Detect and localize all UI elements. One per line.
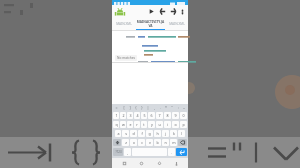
button[interactable]: x	[130, 139, 137, 146]
staticText: 0	[182, 113, 185, 118]
button[interactable]: q	[113, 121, 119, 128]
button[interactable]: e	[127, 121, 133, 128]
button[interactable]: o	[172, 121, 179, 128]
button[interactable]: 6	[148, 112, 155, 119]
button[interactable]: App icon	[115, 7, 125, 17]
button[interactable]: f	[138, 130, 145, 137]
staticText: g	[148, 131, 151, 136]
button[interactable]: 1	[113, 112, 119, 119]
button[interactable]: ]	[127, 104, 133, 111]
button[interactable]: ⌄	[181, 104, 187, 111]
staticText: "	[171, 105, 173, 110]
button[interactable]: r	[134, 121, 140, 128]
button[interactable]: *	[163, 104, 169, 111]
staticText: No matches	[117, 56, 135, 60]
button[interactable]: [	[120, 104, 127, 111]
button[interactable]: |	[145, 104, 151, 111]
button[interactable]: a	[115, 130, 121, 137]
button[interactable]: j	[162, 130, 169, 137]
button[interactable]: 2	[120, 112, 126, 119]
button[interactable]: "	[169, 104, 175, 111]
button[interactable]: No matches	[117, 55, 135, 61]
button[interactable]: t	[141, 121, 147, 128]
button[interactable]: 7	[156, 112, 163, 119]
button[interactable]: Undo	[157, 5, 168, 18]
staticText: [	[123, 105, 125, 110]
staticText: z	[125, 140, 127, 145]
staticText: b	[156, 140, 159, 145]
staticText: }	[141, 105, 143, 110]
button[interactable]: z	[122, 139, 129, 146]
staticText: t	[143, 122, 145, 127]
button[interactable]: ,	[151, 104, 157, 111]
staticText: ,	[127, 150, 128, 155]
staticText: 5	[143, 113, 146, 118]
button[interactable]: ?123	[113, 148, 123, 156]
staticText: 8	[166, 113, 169, 118]
button[interactable]: v	[146, 139, 153, 146]
staticText: 4	[136, 113, 139, 118]
staticText: =	[115, 105, 118, 110]
button[interactable]: {	[133, 104, 139, 111]
staticText: |	[147, 105, 149, 110]
button[interactable]: MAIN.XML	[112, 18, 136, 29]
button[interactable]: }	[139, 104, 145, 111]
button[interactable]: h	[154, 130, 161, 137]
button[interactable]: Menu	[171, 158, 181, 168]
button[interactable]: Redo	[168, 5, 179, 18]
button[interactable]: u	[156, 121, 163, 128]
staticText: q	[115, 122, 118, 127]
staticText: 7	[158, 113, 161, 118]
button[interactable]: MAIN.XML	[165, 18, 188, 29]
button[interactable]: More options	[179, 5, 186, 18]
button[interactable]: m	[170, 139, 177, 146]
staticText: MAIN.XML	[169, 22, 185, 26]
button[interactable]: 5	[141, 112, 147, 119]
button[interactable]: k	[170, 130, 177, 137]
button[interactable]: Back	[119, 158, 129, 168]
button[interactable]: s	[122, 130, 129, 137]
button[interactable]: w	[120, 121, 126, 128]
button[interactable]: i	[164, 121, 171, 128]
staticText: d	[132, 131, 135, 136]
button[interactable]: b	[154, 139, 161, 146]
staticText: e	[129, 122, 132, 127]
staticText: MAINACTIVITY.JAVA	[136, 20, 165, 28]
button[interactable]: Home	[136, 158, 146, 168]
staticText: 3	[129, 113, 132, 118]
button[interactable]: 9	[172, 112, 179, 119]
button[interactable]: c	[138, 139, 145, 146]
button[interactable]: :	[175, 104, 181, 111]
staticText: x	[133, 140, 135, 145]
button[interactable]: 8	[164, 112, 171, 119]
button[interactable]: =	[113, 104, 120, 111]
button[interactable]: Enter	[176, 148, 187, 156]
staticText: {	[135, 105, 137, 110]
staticText: 6	[150, 113, 153, 118]
button[interactable]: l	[178, 130, 185, 137]
button[interactable]: p	[180, 121, 187, 128]
button[interactable]: .	[168, 148, 175, 156]
staticText: k	[173, 131, 175, 136]
button[interactable]: 3	[127, 112, 133, 119]
staticText: MAIN.XML	[116, 22, 132, 26]
staticText: h	[156, 131, 159, 136]
staticText: f	[141, 131, 143, 136]
button[interactable]: d	[130, 130, 137, 137]
button[interactable]: ,	[124, 148, 131, 156]
staticText: c	[141, 140, 143, 145]
button[interactable]: y	[148, 121, 155, 128]
staticText: y	[151, 122, 153, 127]
button[interactable]: Backspace	[178, 139, 187, 146]
button[interactable]: Shift	[113, 139, 121, 146]
button[interactable]: Recents	[154, 158, 164, 168]
button[interactable]: 4	[134, 112, 140, 119]
button[interactable]: MAINACTIVITY.JAVA	[136, 18, 165, 29]
button[interactable]: n	[162, 139, 169, 146]
button[interactable]: g	[146, 130, 153, 137]
button[interactable]: Run	[146, 5, 157, 18]
button[interactable]: 0	[180, 112, 187, 119]
staticText: :	[178, 105, 179, 110]
